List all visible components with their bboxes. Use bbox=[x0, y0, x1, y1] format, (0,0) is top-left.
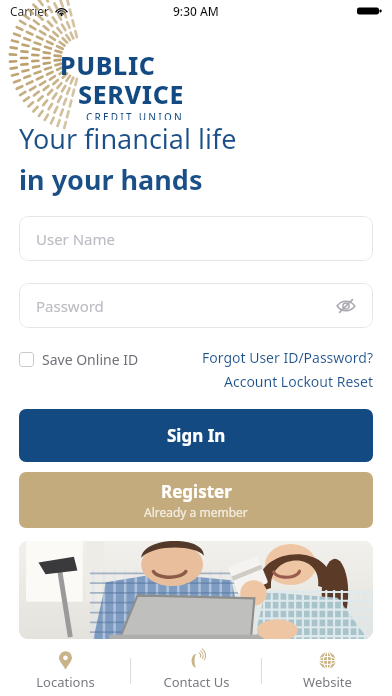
button[interactable]: Account Lockout Reset bbox=[224, 372, 373, 391]
staticText: Locations bbox=[36, 673, 95, 691]
staticText: Your financial life bbox=[19, 120, 237, 157]
button[interactable]: Promotional image bbox=[19, 541, 373, 639]
button[interactable]: Show password bbox=[331, 291, 361, 321]
button[interactable]: Sign In bbox=[19, 409, 373, 462]
staticText: Sign In bbox=[167, 424, 226, 447]
staticText: CREDIT UNION bbox=[86, 110, 184, 120]
button[interactable]: Locations bbox=[0, 646, 130, 696]
staticText: Save Online ID bbox=[42, 350, 139, 369]
staticText: PUBLIC bbox=[60, 48, 156, 82]
staticText: Already a member bbox=[144, 504, 248, 520]
staticText: Password bbox=[36, 296, 104, 316]
button[interactable]: Save Online ID bbox=[19, 348, 139, 371]
staticText: User Name bbox=[36, 229, 116, 249]
staticText: 9:30 AM bbox=[173, 3, 219, 19]
staticText: Contact Us bbox=[163, 673, 230, 691]
button[interactable]: Password bbox=[19, 283, 373, 328]
staticText: Carrier bbox=[10, 3, 50, 19]
button[interactable]: Register bbox=[19, 472, 373, 528]
staticText: Website bbox=[303, 673, 352, 691]
button[interactable]: Contact Us bbox=[131, 646, 261, 696]
button[interactable]: Website bbox=[262, 646, 392, 696]
button[interactable]: User Name bbox=[19, 216, 373, 261]
button[interactable]: Forgot User ID/Password? bbox=[202, 348, 373, 367]
staticText: Register bbox=[161, 480, 232, 503]
staticText: SERVICE bbox=[78, 77, 184, 111]
staticText: in your hands bbox=[19, 161, 203, 198]
